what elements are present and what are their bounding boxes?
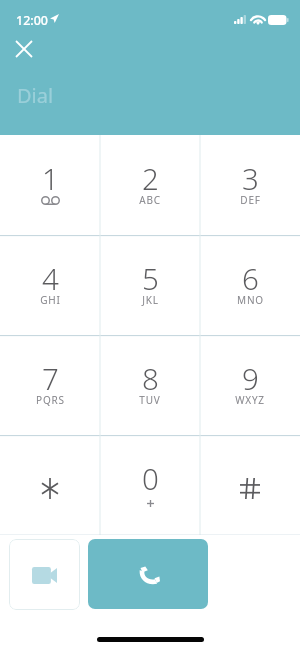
staticText: 1 xyxy=(42,158,59,198)
button[interactable]: 4 xyxy=(0,235,100,335)
staticText: TUV xyxy=(139,393,161,407)
button[interactable]: Video call xyxy=(9,539,80,610)
staticText: 4 xyxy=(42,258,59,298)
staticText: 8 xyxy=(142,358,159,398)
button[interactable]: Call xyxy=(88,539,208,609)
button[interactable]: 9 xyxy=(200,335,300,435)
button[interactable]: 7 xyxy=(0,335,100,435)
button[interactable]: 1 xyxy=(0,135,100,235)
button[interactable] xyxy=(200,435,300,535)
staticText: 7 xyxy=(42,358,59,398)
button[interactable]: 0 xyxy=(100,435,200,535)
staticText: JKL xyxy=(142,293,159,307)
staticText: 9 xyxy=(242,358,259,398)
button[interactable]: 2 xyxy=(100,135,200,235)
button[interactable] xyxy=(0,435,100,535)
staticText: 5 xyxy=(142,258,159,298)
staticText: GHI xyxy=(40,293,61,307)
staticText: 6 xyxy=(242,258,259,298)
staticText: DEF xyxy=(240,193,261,207)
staticText: WXYZ xyxy=(235,393,265,407)
button[interactable]: 6 xyxy=(200,235,300,335)
staticText: 0 xyxy=(142,458,159,498)
staticText: 12:00 xyxy=(16,12,49,29)
button[interactable]: 3 xyxy=(200,135,300,235)
button[interactable]: 5 xyxy=(100,235,200,335)
button[interactable]: Close xyxy=(11,36,37,62)
staticText: PQRS xyxy=(36,393,65,407)
staticText: Dial xyxy=(17,82,54,109)
staticText: 2 xyxy=(142,158,159,198)
staticText: 3 xyxy=(242,158,259,198)
staticText: MNO xyxy=(237,293,264,307)
button[interactable]: Dial xyxy=(0,78,300,112)
staticText: ABC xyxy=(139,193,161,207)
button[interactable]: 8 xyxy=(100,335,200,435)
